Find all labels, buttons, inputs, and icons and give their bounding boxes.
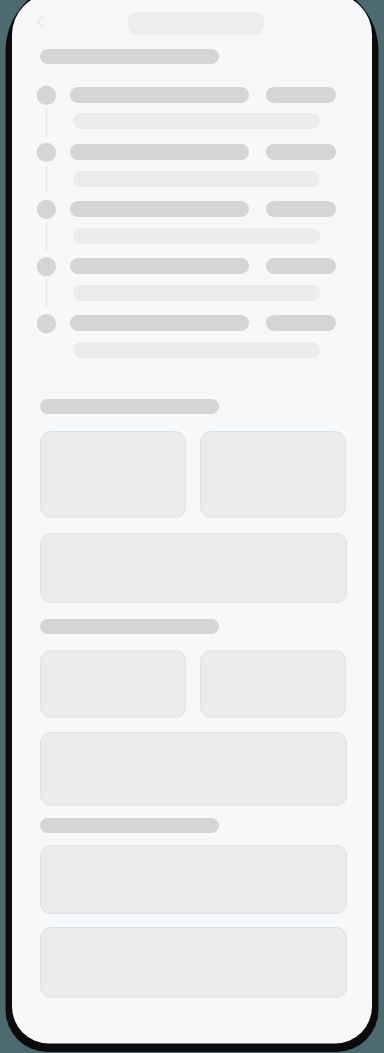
button[interactable] <box>200 650 346 718</box>
button[interactable] <box>40 650 186 718</box>
